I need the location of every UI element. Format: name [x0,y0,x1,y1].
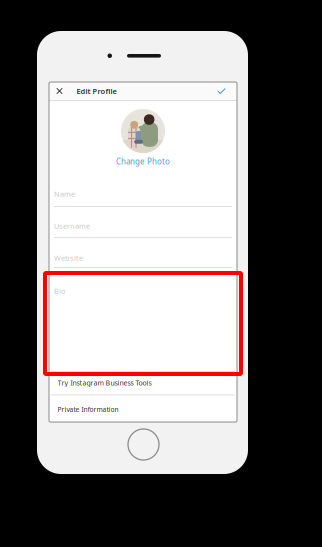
button[interactable]: Try Instagram Business Tools [49,371,237,394]
staticText: Name [54,189,75,199]
staticText: Change Photo [116,156,170,167]
button[interactable]: Close [51,82,68,100]
staticText: Username [54,221,90,231]
staticText: Website [54,253,83,263]
staticText: Bio [54,286,65,296]
button[interactable]: Done [213,82,230,100]
staticText: Try Instagram Business Tools [57,378,151,387]
button[interactable]: Change Photo [49,109,237,167]
button[interactable]: Private Information [49,394,237,424]
staticText: Edit Profile [76,86,116,96]
staticText: Private Information [57,405,118,414]
